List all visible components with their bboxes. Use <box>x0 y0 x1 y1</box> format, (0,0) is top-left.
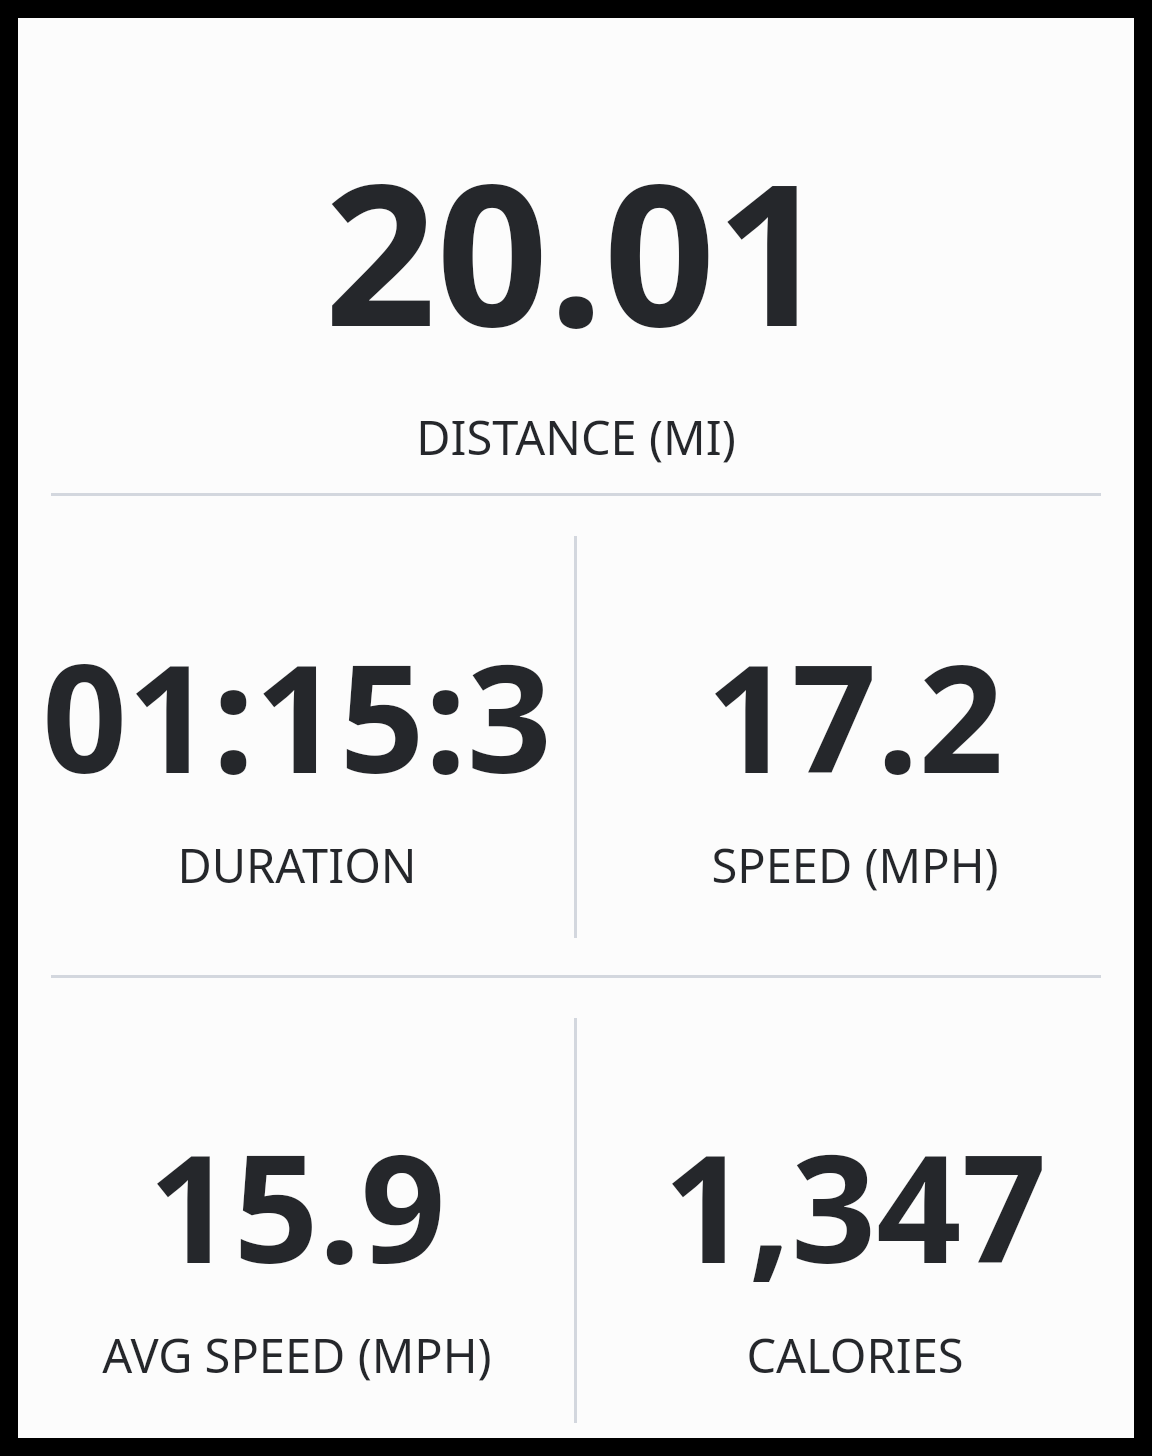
staticText: 15.9 <box>148 1104 446 1307</box>
staticText: AVG SPEED (MPH) <box>102 1323 492 1387</box>
button[interactable]: 01:15:3 <box>42 614 552 897</box>
other: Watermark <box>58 1203 218 1263</box>
button[interactable]: 17.2 <box>706 614 1004 897</box>
button[interactable]: 20.01 <box>18 18 1134 493</box>
staticText: 01:15:3 <box>42 614 552 817</box>
staticText: 17.2 <box>706 614 1004 817</box>
staticText: DURATION <box>177 833 417 897</box>
staticText: DISTANCE (MI) <box>416 405 736 469</box>
staticText: 1,347 <box>663 1104 1047 1307</box>
staticText: 20.01 <box>324 116 828 383</box>
button[interactable]: 1,347 <box>663 1104 1047 1387</box>
button[interactable]: 15.9 <box>102 1104 492 1387</box>
staticText: SPEED (MPH) <box>711 833 999 897</box>
staticText: CALORIES <box>746 1323 964 1387</box>
